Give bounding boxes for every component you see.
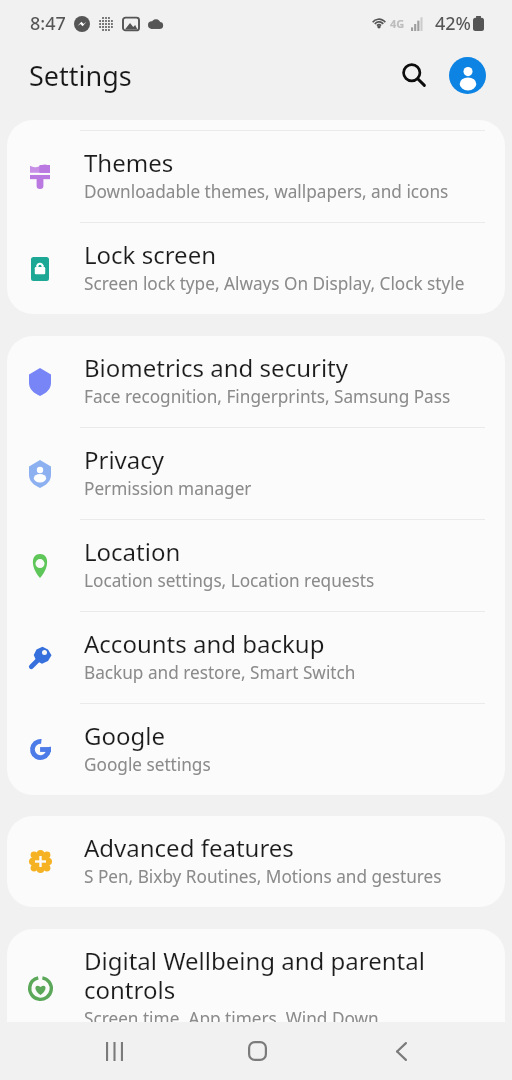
button[interactable]: Themes xyxy=(7,131,505,223)
staticText: Biometrics and security xyxy=(84,351,504,384)
staticText: 8:47 xyxy=(30,11,66,36)
button[interactable]: Account xyxy=(449,57,486,94)
staticText: 42% xyxy=(435,11,471,36)
button[interactable]: Lock screen xyxy=(7,223,505,314)
staticText: Google settings xyxy=(84,753,211,776)
button[interactable]: Digital Wellbeing and parental controls xyxy=(7,929,505,1048)
button[interactable]: Home xyxy=(201,1022,313,1080)
staticText: Digital Wellbeing and parental controls xyxy=(84,944,434,1006)
staticText: Accounts and backup xyxy=(84,627,504,660)
staticText: S Pen, Bixby Routines, Motions and gestu… xyxy=(84,865,442,888)
button[interactable]: Google xyxy=(7,704,505,795)
staticText: Screen time, App timers, Wind Down xyxy=(84,1007,379,1030)
button[interactable]: Accounts and backup xyxy=(7,612,505,704)
button[interactable]: Privacy xyxy=(7,428,505,520)
staticText: Backup and restore, Smart Switch xyxy=(84,661,356,684)
staticText: Google xyxy=(84,719,504,752)
button[interactable]: Biometrics and security xyxy=(7,336,505,428)
button[interactable]: Advanced features xyxy=(7,816,505,907)
staticText: Permission manager xyxy=(84,477,252,500)
staticText: Lock screen xyxy=(84,238,504,271)
staticText: Location settings, Location requests xyxy=(84,569,375,592)
staticText: Screen lock type, Always On Display, Clo… xyxy=(84,272,465,295)
staticText: 4G xyxy=(390,16,405,31)
staticText: Settings xyxy=(29,57,132,94)
button[interactable]: Search xyxy=(398,53,442,97)
staticText: Downloadable themes, wallpapers, and ico… xyxy=(84,180,449,203)
button[interactable]: Location xyxy=(7,520,505,612)
staticText: Privacy xyxy=(84,443,504,476)
staticText: Location xyxy=(84,535,504,568)
button[interactable]: Back xyxy=(345,1022,457,1080)
staticText: Face recognition, Fingerprints, Samsung … xyxy=(84,385,451,408)
staticText: Advanced features xyxy=(84,831,504,864)
button[interactable]: Recents xyxy=(58,1022,170,1080)
staticText: Themes xyxy=(84,146,504,179)
